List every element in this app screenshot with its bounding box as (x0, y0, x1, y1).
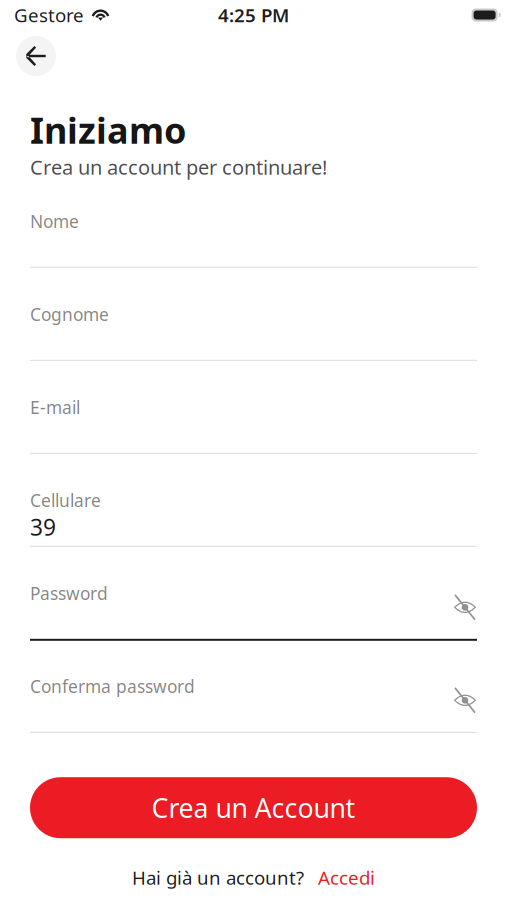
staticText: Crea un account per continuare! (30, 154, 327, 180)
staticText: E-mail (30, 396, 80, 419)
staticText: Password (30, 582, 108, 605)
button[interactable]: Crea un Account (30, 777, 477, 838)
staticText: Iniziamo (30, 106, 187, 154)
button[interactable]: Mostra password (439, 682, 477, 718)
button[interactable]: Indietro (16, 36, 56, 76)
staticText: Conferma password (30, 675, 195, 698)
staticText: Gestore (14, 3, 84, 27)
staticText: Crea un Account (151, 790, 355, 825)
staticText: Hai già un account? (132, 865, 304, 890)
staticText: Nome (30, 210, 79, 233)
staticText: Accedi (318, 865, 375, 890)
button[interactable]: Mostra password (439, 589, 477, 625)
staticText: Cognome (30, 303, 109, 326)
staticText: Cellulare (30, 489, 101, 512)
staticText: 4:25 PM (218, 3, 289, 27)
button[interactable]: Accedi (318, 865, 375, 890)
staticText: 39 (30, 512, 56, 542)
